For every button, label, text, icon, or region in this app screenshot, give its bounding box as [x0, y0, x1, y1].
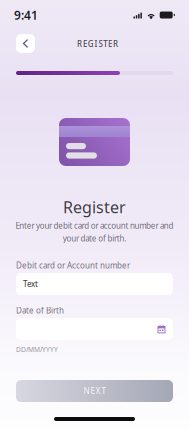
staticText: your date of birth.	[63, 233, 126, 244]
staticText: Debit card or Account number	[16, 260, 130, 271]
staticText: 9:41	[14, 7, 38, 23]
staticText: REGISTER	[77, 39, 118, 49]
staticText: Text	[23, 279, 38, 289]
button[interactable]: NEXT	[16, 380, 173, 402]
staticText: Date of Birth	[16, 305, 64, 316]
button[interactable]: Text	[16, 273, 173, 295]
button[interactable]: Back	[16, 34, 35, 53]
staticText: DD/MM/YYYY	[16, 345, 58, 354]
button[interactable]: Choose date	[16, 318, 173, 340]
staticText: NEXT	[83, 386, 105, 396]
staticText: Enter your debit card or account number …	[15, 220, 174, 231]
staticText: Register	[63, 196, 126, 218]
